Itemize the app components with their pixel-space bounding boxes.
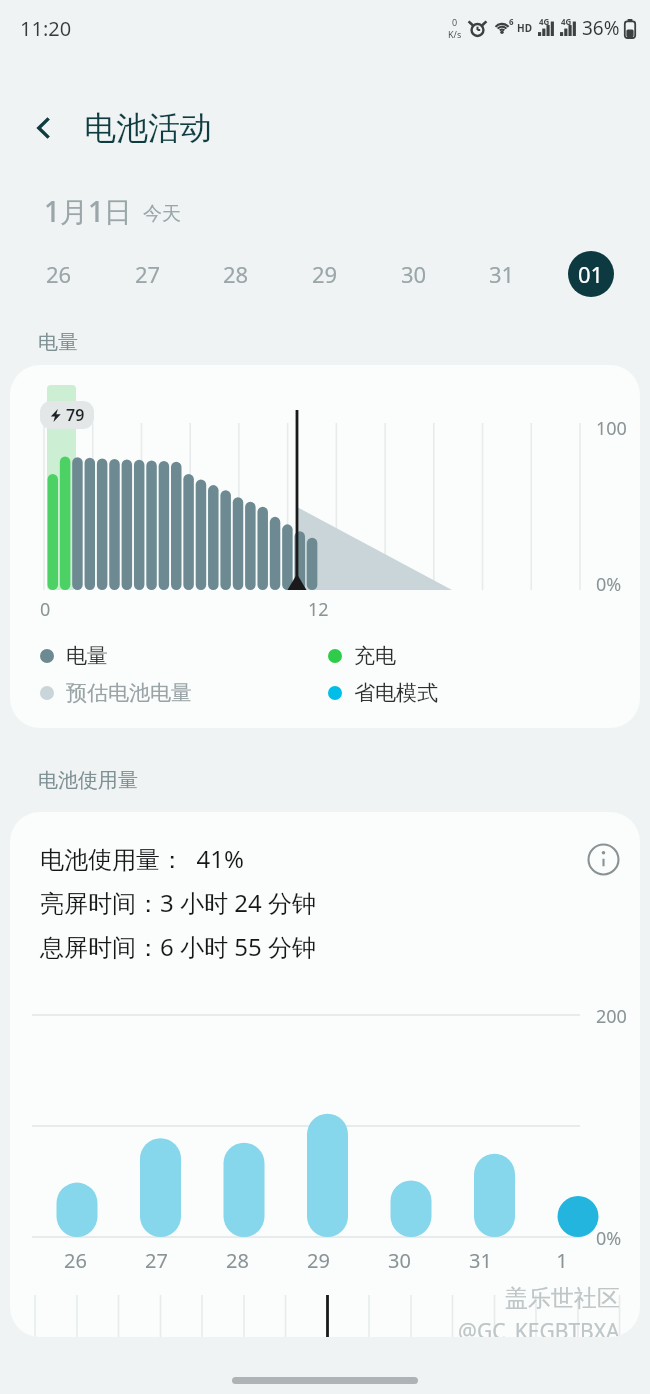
button[interactable]: 26 (36, 251, 82, 297)
staticText: 6 (509, 16, 514, 27)
button[interactable]: Info (580, 836, 626, 882)
staticText: 电量 (38, 330, 78, 355)
staticText: K/s (448, 28, 462, 40)
staticText: 100 (596, 416, 627, 441)
staticText: 1 (556, 1247, 568, 1274)
staticText: 0% (596, 1226, 622, 1251)
staticText: 息屏时间：6 小时 55 分钟 (40, 930, 316, 963)
button[interactable]: 28 (213, 251, 259, 297)
staticText: 亮屏时间：3 小时 24 分钟 (40, 886, 316, 919)
staticText: 27 (135, 259, 161, 289)
button[interactable]: 电量 (40, 643, 328, 669)
staticText: 200 (596, 1004, 627, 1029)
button[interactable]: 预估电池电量 (40, 680, 328, 706)
staticText: 12 (308, 597, 329, 622)
staticText: 28 (226, 1247, 249, 1274)
button[interactable]: 30 (391, 251, 437, 297)
button[interactable]: 充电 (328, 643, 396, 669)
staticText: 11:20 (20, 15, 72, 42)
staticText: 盖乐世社区 (505, 1284, 620, 1313)
staticText: 电池使用量 (38, 768, 138, 793)
button[interactable]: 01 (568, 251, 614, 297)
staticText: 79 (66, 404, 85, 426)
staticText: 29 (312, 259, 338, 289)
staticText: 今天 (143, 202, 181, 226)
staticText: 电池使用量： 41% (40, 842, 244, 875)
staticText: 省电模式 (354, 680, 438, 706)
staticText: 1月1日 (44, 192, 133, 230)
button[interactable]: 27 (125, 251, 171, 297)
staticText: 28 (223, 259, 249, 289)
button[interactable]: 31 (479, 251, 525, 297)
staticText: 31 (489, 259, 515, 289)
button[interactable]: 79 (10, 365, 640, 728)
staticText: 31 (469, 1247, 492, 1274)
staticText: 27 (145, 1247, 168, 1274)
staticText: 26 (64, 1247, 87, 1274)
staticText: 0 (40, 597, 51, 622)
staticText: HD (517, 21, 532, 35)
staticText: 电量 (66, 643, 108, 669)
staticText: 0 (452, 16, 458, 28)
button[interactable]: 电池使用量： 41% (10, 812, 640, 1337)
staticText: 26 (46, 259, 72, 289)
button[interactable]: 省电模式 (328, 680, 438, 706)
staticText: 0% (596, 572, 622, 597)
staticText: 充电 (354, 643, 396, 669)
staticText: 30 (401, 259, 427, 289)
staticText: 电池活动 (84, 108, 212, 148)
staticText: @GC_KEGBTBXA (458, 1317, 620, 1337)
staticText: 4G (539, 16, 550, 27)
staticText: 01 (578, 259, 604, 289)
staticText: 30 (388, 1247, 411, 1274)
staticText: 29 (307, 1247, 330, 1274)
button[interactable]: 29 (302, 251, 348, 297)
button[interactable]: Back (16, 100, 72, 156)
staticText: 4G (561, 16, 572, 27)
staticText: 36% (582, 15, 620, 41)
staticText: 预估电池电量 (66, 680, 192, 706)
